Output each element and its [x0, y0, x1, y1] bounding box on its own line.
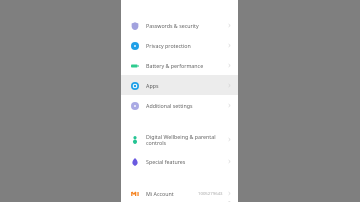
staticText: Digital Wellbeing & parental controls: [146, 133, 227, 147]
staticText: Privacy protection: [146, 42, 227, 49]
button[interactable]: Digital Wellbeing & parental controls: [121, 128, 238, 151]
staticText: 1005279643: [198, 190, 223, 196]
button[interactable]: Additional settings: [121, 95, 238, 115]
staticText: Battery & performance: [146, 62, 227, 69]
button[interactable]: Passwords & security: [121, 15, 238, 35]
staticText: Additional settings: [146, 102, 227, 109]
button[interactable]: Privacy protection: [121, 35, 238, 55]
staticText: Passwords & security: [146, 22, 227, 29]
button[interactable]: Mi Account: [121, 184, 238, 202]
staticText: Special features: [146, 158, 227, 165]
staticText: Mi Account: [146, 190, 198, 197]
staticText: Apps: [146, 82, 227, 89]
button[interactable]: Special features: [121, 151, 238, 171]
button[interactable]: Apps: [121, 75, 238, 95]
button[interactable]: Battery & performance: [121, 55, 238, 75]
